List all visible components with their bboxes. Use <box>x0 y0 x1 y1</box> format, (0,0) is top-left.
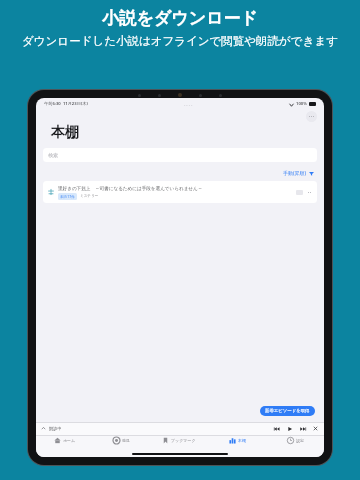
staticText: 午前6:30 11月23日(木) <box>44 101 88 107</box>
staticText: ダウンロードした小説はオフラインで閲覧や朗読ができます <box>22 34 338 48</box>
staticText: 設定 <box>296 438 304 443</box>
button[interactable]: ブックマーク <box>150 437 208 457</box>
button[interactable]: 発見 <box>93 437 150 457</box>
staticText: - - - - <box>184 102 193 107</box>
button[interactable]: 項目メニュー <box>306 190 313 195</box>
staticText: 里好きの下剋上 ～司書になるためには手段を選んでいられません～ <box>58 185 203 191</box>
staticText: ホーム <box>63 438 76 443</box>
button[interactable]: プレイヤーを開く <box>41 426 46 431</box>
button[interactable]: 次へ <box>299 425 306 432</box>
staticText: 本棚 <box>238 438 246 443</box>
button[interactable]: 手動(昇順) <box>281 169 316 178</box>
staticText: ブックマーク <box>171 438 196 443</box>
button[interactable]: 本棚 <box>208 437 266 457</box>
button[interactable]: ホーム <box>36 437 93 457</box>
staticText: 発見 <box>122 438 130 443</box>
staticText: 新着エピソードを取得 <box>265 408 310 414</box>
staticText: 100% <box>296 101 307 107</box>
staticText: 本棚 <box>51 124 79 142</box>
staticText: 検索 <box>48 152 58 158</box>
button[interactable]: 閉じる <box>312 425 319 432</box>
staticText: 小説をダウンロード <box>102 8 258 29</box>
staticText: 未読17件 <box>60 194 75 199</box>
button[interactable]: 設定 <box>266 437 324 457</box>
staticText: 朗読中 <box>49 426 62 431</box>
button[interactable]: 里好きの下剋上 ～司書になるためには手段を選んでいられません～ <box>43 181 317 203</box>
staticText: 手動(昇順) <box>283 170 307 177</box>
button[interactable]: その他 <box>306 111 317 122</box>
button[interactable]: 前へ <box>273 425 280 432</box>
button[interactable]: 再生 <box>286 425 293 432</box>
button[interactable]: 検索 <box>43 148 317 162</box>
staticText: ミステリー <box>80 194 99 199</box>
button[interactable]: 新着エピソードを取得 <box>260 406 315 416</box>
